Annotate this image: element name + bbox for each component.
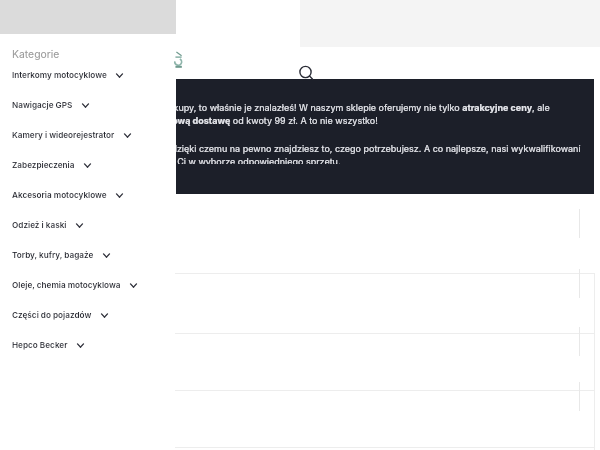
button[interactable]: Hepco Becker bbox=[0, 330, 176, 360]
staticText: Interkomy motocyklowe bbox=[12, 70, 107, 80]
staticText: Kategorie bbox=[12, 48, 60, 61]
staticText: Szukasz sklepu, w którym zrobisz dobre z… bbox=[0, 102, 584, 126]
staticText: Odzież i kaski bbox=[12, 220, 67, 230]
staticText: Torby, kufry, bagaże bbox=[12, 250, 94, 260]
button[interactable]: Torby, kufry, bagaże bbox=[0, 240, 176, 270]
staticText: Kamery i wideorejestrator bbox=[12, 130, 115, 140]
button[interactable]: Odzież i kaski bbox=[0, 210, 176, 240]
staticText: Nasza oferta jest naprawdę rozbudowana, … bbox=[0, 143, 584, 164]
button[interactable]: Kamery i wideorejestrator bbox=[0, 120, 176, 150]
staticText: Akcesoria motocyklowe bbox=[12, 190, 107, 200]
button[interactable]: Części do pojazdów bbox=[0, 300, 176, 330]
button[interactable]: Search bbox=[294, 61, 317, 84]
button[interactable]: Akcesoria motocyklowe bbox=[0, 180, 176, 210]
staticText: Zabezpieczenia bbox=[12, 160, 75, 170]
button[interactable]: Interkomy motocyklowe bbox=[0, 60, 176, 90]
staticText: Hepco Becker bbox=[12, 340, 68, 350]
button[interactable]: Oleje, chemia motocyklowa bbox=[0, 270, 176, 300]
button[interactable]: Nawigacje GPS bbox=[0, 90, 176, 120]
staticText: Nawigacje GPS bbox=[12, 100, 73, 110]
staticText: Części do pojazdów bbox=[12, 310, 92, 320]
staticText: Oleje, chemia motocyklowa bbox=[12, 280, 121, 290]
button[interactable]: Zabezpieczenia bbox=[0, 150, 176, 180]
